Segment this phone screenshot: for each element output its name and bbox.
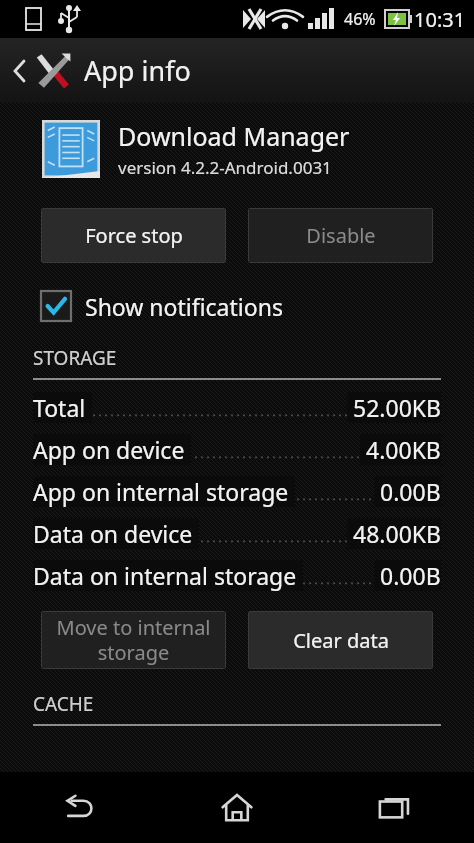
staticText: 10:31: [414, 6, 466, 33]
staticText: Disable: [306, 222, 376, 249]
staticText: CACHE: [33, 691, 94, 717]
staticText: 48.00KB: [353, 518, 441, 549]
staticText: STORAGE: [33, 345, 117, 371]
staticText: Data on device: [33, 518, 193, 549]
staticText: Force stop: [85, 222, 183, 249]
staticText: 0.00B: [380, 560, 441, 591]
button[interactable]: Data on device: [33, 512, 441, 554]
button[interactable]: Move to internal storage: [41, 611, 226, 669]
staticText: Show notifications: [85, 291, 283, 322]
staticText: Clear data: [293, 627, 389, 654]
button[interactable]: Home: [158, 772, 316, 843]
button[interactable]: Clear data: [248, 611, 433, 669]
staticText: Total: [33, 392, 86, 423]
staticText: App info: [84, 52, 191, 89]
staticText: version 4.2.2-Android.0031: [118, 156, 332, 179]
button[interactable]: Back: [0, 772, 158, 843]
button[interactable]: Back, App info: [0, 38, 474, 103]
staticText: 0.00B: [380, 476, 441, 507]
staticText: 4.00KB: [366, 434, 441, 465]
staticText: Data on internal storage: [33, 560, 297, 591]
staticText: 46%: [344, 8, 376, 30]
staticText: 52.00KB: [353, 392, 441, 423]
staticText: App on internal storage: [33, 476, 289, 507]
button[interactable]: Force stop: [41, 208, 226, 263]
staticText: Download Manager: [118, 119, 350, 153]
button[interactable]: Disable: [248, 208, 433, 263]
staticText: Move to internal storage: [56, 614, 211, 666]
button[interactable]: Show notifications: [41, 287, 433, 325]
staticText: App on device: [33, 434, 185, 465]
button[interactable]: App on internal storage: [33, 470, 441, 512]
button[interactable]: Recent apps: [316, 772, 474, 843]
button[interactable]: Total: [33, 386, 441, 428]
button[interactable]: Data on internal storage: [33, 554, 441, 596]
button[interactable]: App on device: [33, 428, 441, 470]
